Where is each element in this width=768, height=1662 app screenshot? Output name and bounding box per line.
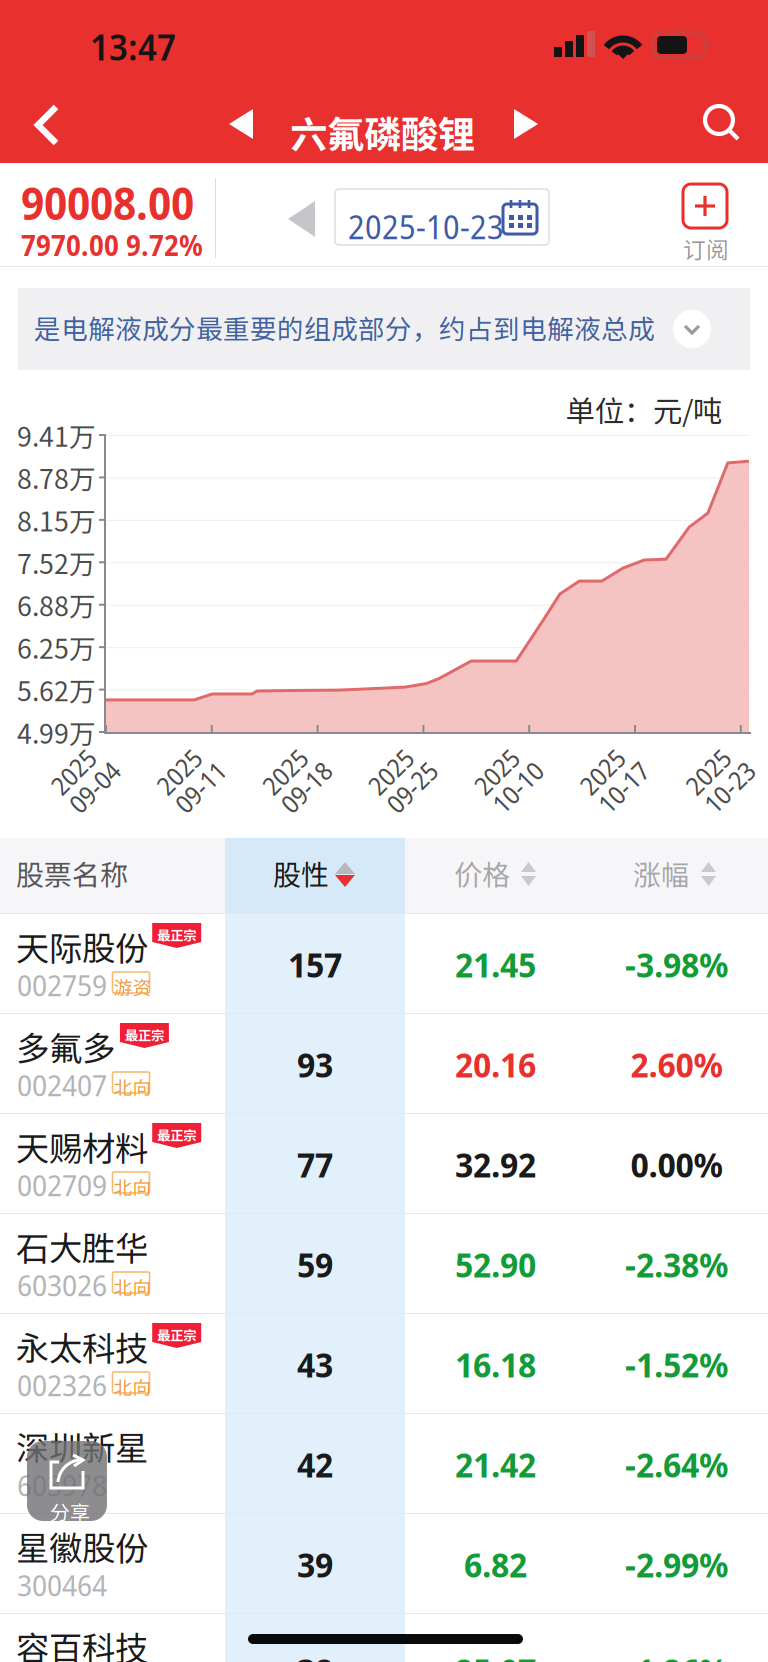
- staticText: 4.99万: [17, 713, 96, 751]
- button[interactable]: 星徽股份: [0, 1514, 768, 1614]
- staticText: 2025: [158, 750, 210, 784]
- staticText: 北向: [113, 1373, 151, 1400]
- staticText: 星徽股份: [16, 1522, 148, 1570]
- staticText: 20.16: [455, 1040, 536, 1088]
- staticText: 9.72%: [126, 226, 203, 264]
- button[interactable]: 石大胜华: [0, 1214, 768, 1314]
- staticText: 002759: [17, 965, 107, 1005]
- button[interactable]: 深圳新星: [0, 1414, 768, 1514]
- staticText: 300464: [17, 1565, 107, 1605]
- staticText: 涨幅: [633, 853, 689, 893]
- staticText: 最正宗: [157, 1325, 196, 1344]
- button[interactable]: 永太科技: [0, 1314, 768, 1414]
- button[interactable]: 是电解液成分最重要的组成部分，约占到电解液总成: [18, 288, 750, 370]
- staticText: 多氟多: [16, 1022, 115, 1070]
- button[interactable]: Next sector: [499, 97, 553, 151]
- staticText: 股票名称: [16, 853, 128, 893]
- button[interactable]: 股性: [225, 838, 405, 914]
- staticText: 石大胜华: [16, 1222, 148, 1270]
- button[interactable]: 2025-10-23: [335, 189, 549, 245]
- staticText: -2.38%: [625, 1240, 729, 1288]
- staticText: 002709: [17, 1165, 107, 1205]
- staticText: 39: [297, 1540, 333, 1588]
- staticText: 永太科技: [16, 1322, 148, 1370]
- staticText: 天赐材料: [16, 1122, 148, 1170]
- staticText: 2025: [581, 750, 633, 784]
- staticText: 42: [297, 1440, 333, 1488]
- button[interactable]: Share: [27, 1441, 107, 1521]
- staticText: 2025: [52, 750, 104, 784]
- staticText: 2025: [475, 750, 527, 784]
- staticText: 5.62万: [17, 670, 96, 709]
- staticText: 2025-10-23: [348, 205, 504, 249]
- button[interactable]: Search: [687, 88, 757, 158]
- staticText: 8.78万: [17, 458, 96, 497]
- staticText: 价格: [454, 853, 510, 893]
- button[interactable]: 涨幅: [586, 838, 768, 914]
- staticText: 38: [297, 1646, 333, 1662]
- staticText: 16.18: [455, 1340, 536, 1388]
- button[interactable]: 多氟多: [0, 1014, 768, 1114]
- staticText: 2025: [687, 750, 739, 784]
- staticText: 13:47: [90, 22, 176, 71]
- staticText: 8.15万: [17, 501, 96, 539]
- staticText: 游资: [113, 973, 151, 1000]
- staticText: 天际股份: [16, 922, 148, 970]
- staticText: 单位：元/吨: [566, 388, 722, 430]
- staticText: 43: [297, 1340, 333, 1388]
- staticText: 6.82: [464, 1540, 527, 1588]
- staticText: 2.60%: [630, 1040, 723, 1088]
- staticText: 21.42: [455, 1440, 536, 1488]
- staticText: 90008.00: [21, 173, 194, 233]
- staticText: 深圳新星: [16, 1422, 148, 1470]
- staticText: 09-11: [158, 776, 218, 810]
- button[interactable]: Previous sector: [214, 97, 268, 151]
- staticText: 2025: [369, 750, 421, 784]
- staticText: 最正宗: [157, 1125, 196, 1144]
- staticText: 是电解液成分最重要的组成部分，约占到电解液总成: [34, 308, 655, 347]
- staticText: 93: [297, 1040, 333, 1088]
- staticText: 北向: [113, 1073, 151, 1100]
- staticText: 最正宗: [157, 925, 196, 944]
- staticText: 10-10: [475, 776, 535, 810]
- staticText: -2.64%: [625, 1440, 729, 1488]
- staticText: 21.45: [455, 940, 536, 988]
- staticText: 北向: [113, 1273, 151, 1300]
- staticText: 09-25: [369, 776, 429, 810]
- button[interactable]: 天赐材料: [0, 1114, 768, 1214]
- staticText: 52.90: [455, 1240, 536, 1288]
- staticText: 9.41万: [17, 416, 96, 454]
- staticText: 59: [297, 1240, 333, 1288]
- staticText: 10-23: [687, 776, 747, 810]
- staticText: -1.26%: [625, 1646, 729, 1662]
- staticText: 77: [297, 1140, 333, 1188]
- staticText: 2025: [264, 750, 316, 784]
- staticText: 0.00%: [630, 1140, 723, 1188]
- staticText: 6.88万: [17, 585, 96, 624]
- staticText: 最正宗: [125, 1025, 164, 1044]
- staticText: 北向: [113, 1173, 151, 1200]
- staticText: 7.52万: [17, 543, 96, 582]
- staticText: 订阅: [683, 232, 729, 265]
- staticText: 7970.00: [21, 226, 119, 264]
- staticText: -1.52%: [625, 1340, 729, 1388]
- staticText: 157: [288, 940, 342, 988]
- staticText: 10-17: [581, 776, 641, 810]
- staticText: 25.07: [455, 1646, 536, 1662]
- button[interactable]: 订阅: [657, 184, 753, 264]
- staticText: 09-18: [264, 776, 324, 810]
- staticText: 09-04: [52, 776, 112, 810]
- staticText: 002407: [17, 1065, 107, 1105]
- button[interactable]: 价格: [405, 838, 586, 914]
- staticText: 002326: [17, 1365, 107, 1405]
- staticText: -2.99%: [625, 1540, 729, 1588]
- staticText: 6.25万: [17, 628, 96, 666]
- button[interactable]: Back: [10, 87, 86, 163]
- staticText: 603026: [17, 1265, 107, 1305]
- staticText: -3.98%: [625, 940, 729, 988]
- button[interactable]: 天际股份: [0, 914, 768, 1014]
- staticText: 股性: [273, 853, 329, 893]
- staticText: 分享: [50, 1497, 90, 1526]
- staticText: 603978: [17, 1465, 107, 1505]
- staticText: 32.92: [455, 1140, 536, 1188]
